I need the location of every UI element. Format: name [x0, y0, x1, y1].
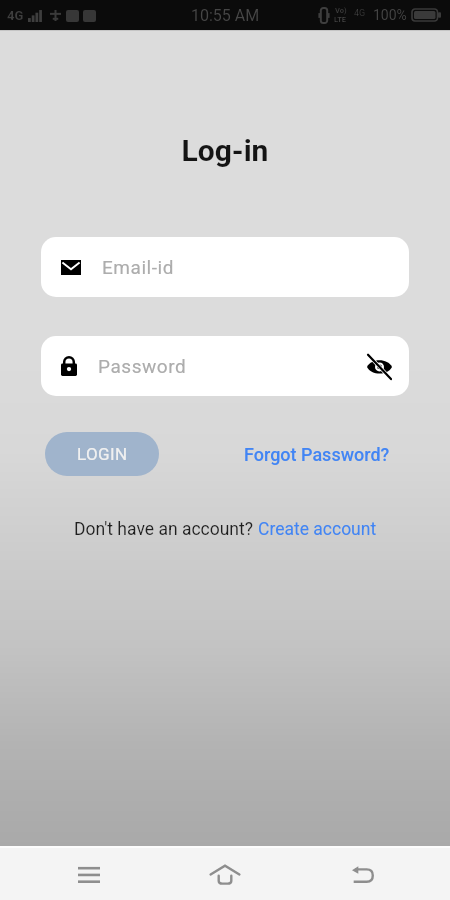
button[interactable]: Create account [258, 519, 377, 540]
button[interactable]: Back [300, 848, 425, 900]
staticText: 4G [354, 8, 366, 19]
button[interactable]: Recents [27, 848, 150, 900]
staticText: Create account [258, 519, 377, 540]
button[interactable]: Toggle password visibility [363, 350, 395, 382]
staticText: 10:55 AM [191, 6, 260, 25]
button[interactable]: Email-id [41, 237, 409, 297]
staticText: Password [98, 355, 187, 377]
staticText: 4G [7, 8, 24, 23]
staticText: Log-in [0, 133, 450, 168]
button[interactable]: Home [150, 848, 300, 900]
button[interactable]: Password [41, 336, 409, 396]
staticText: Forgot Password? [244, 444, 390, 465]
staticText: Vo) [335, 6, 347, 15]
button[interactable]: Forgot Password? [244, 444, 390, 465]
staticText: Email-id [102, 256, 175, 278]
staticText: LTE [334, 15, 347, 24]
staticText: Don't have an account? [74, 519, 258, 540]
staticText: LOGIN [77, 444, 128, 464]
staticText: 100% [373, 7, 407, 23]
button[interactable]: LOGIN [45, 432, 159, 476]
